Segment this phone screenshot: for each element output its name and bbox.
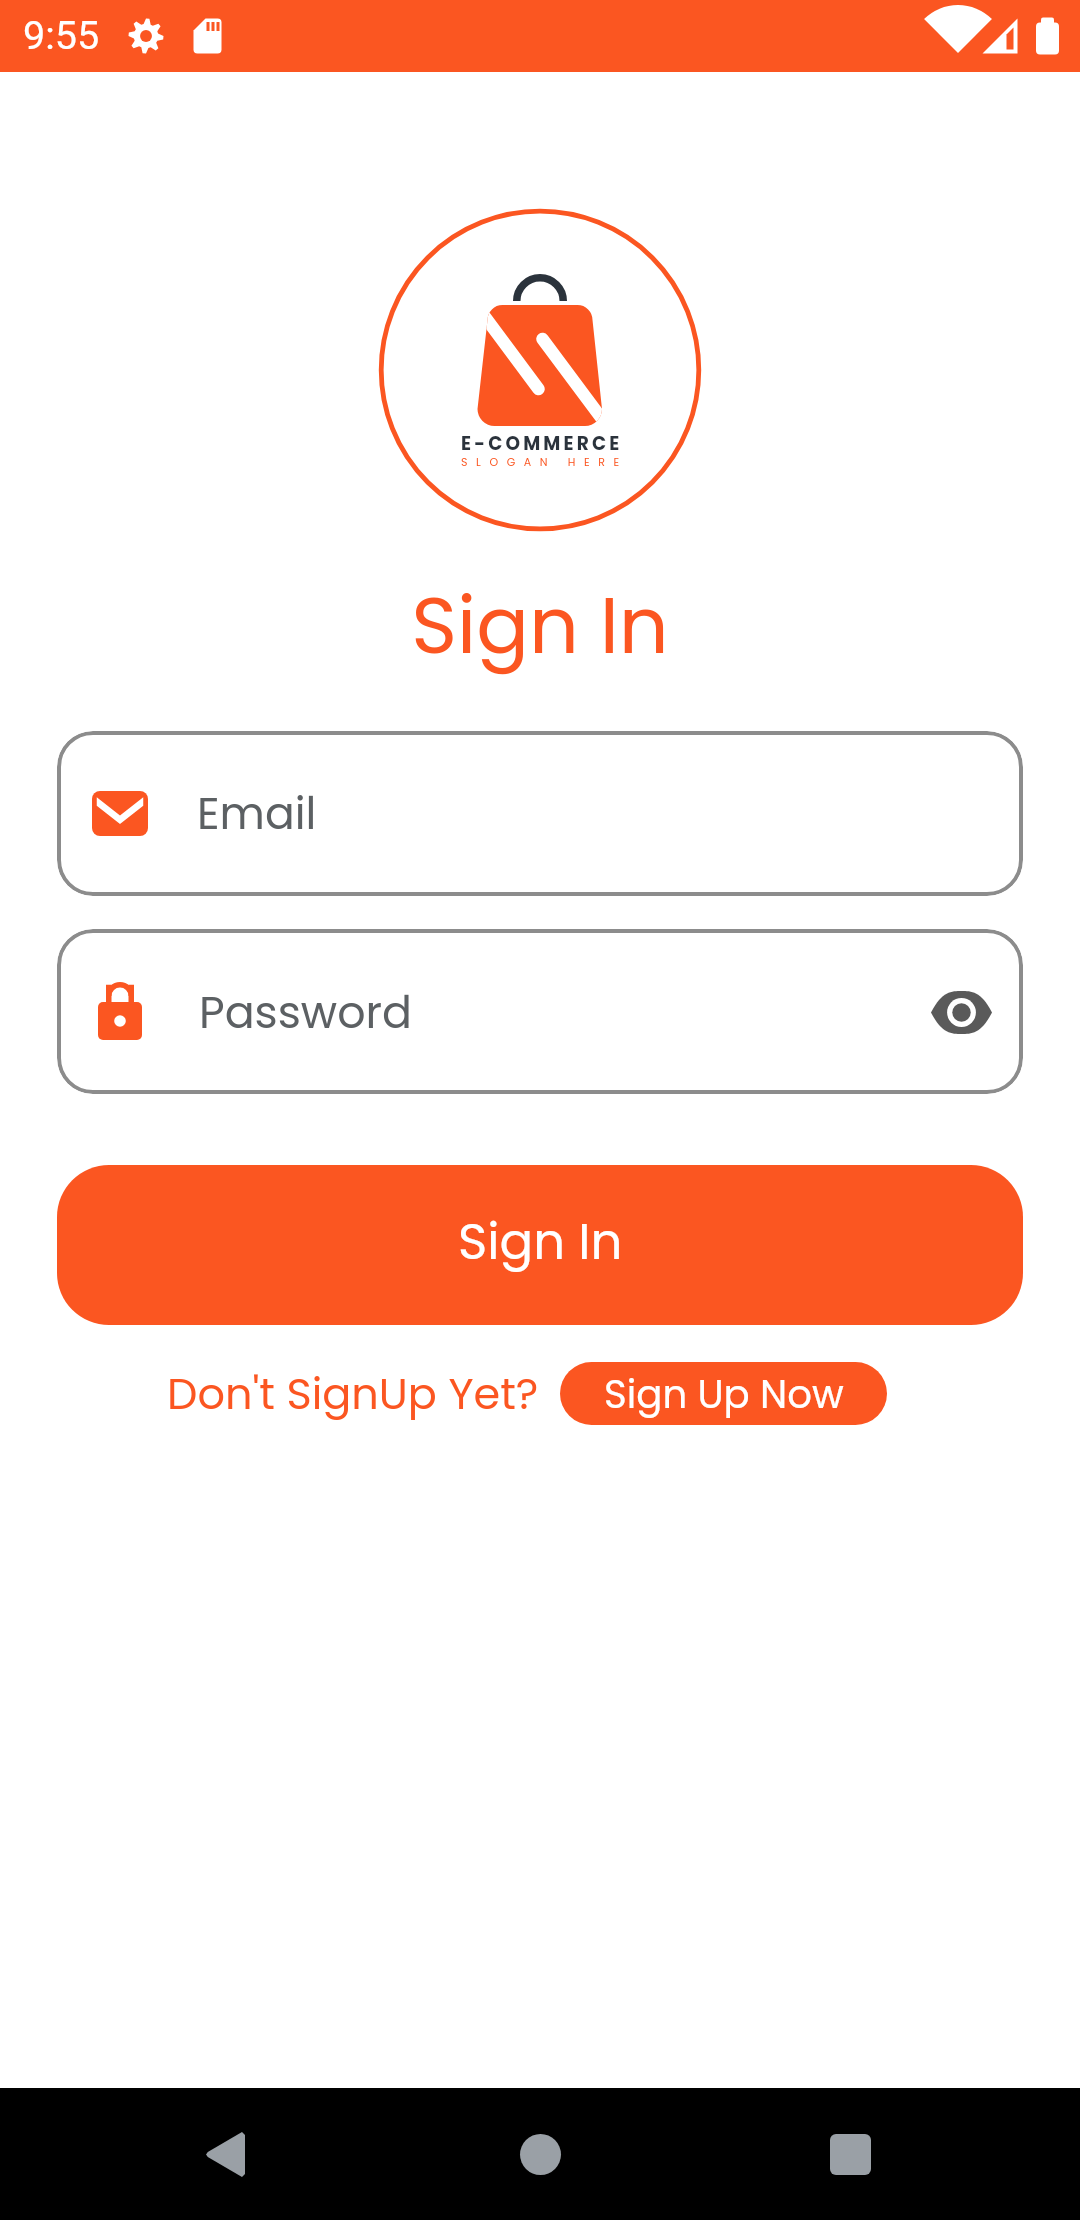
button[interactable]: Password xyxy=(57,929,1023,1094)
staticText: Don't SignUp Yet? xyxy=(167,1364,539,1424)
staticText: 9:55 xyxy=(23,12,100,58)
button[interactable]: Show password xyxy=(917,968,1005,1056)
button[interactable]: Sign Up Now xyxy=(560,1362,887,1425)
staticText: Sign In xyxy=(0,571,1080,680)
button[interactable]: Email xyxy=(57,731,1023,896)
staticText: Password xyxy=(199,981,412,1043)
button[interactable]: Sign In xyxy=(57,1165,1023,1325)
staticText: Sign In xyxy=(458,1207,623,1277)
button[interactable]: Home xyxy=(495,2109,585,2199)
button[interactable]: Back xyxy=(180,2109,270,2199)
staticText: E-COMMERCE xyxy=(461,431,623,457)
button[interactable]: Recents xyxy=(805,2109,895,2199)
staticText: Email xyxy=(197,783,317,845)
staticText: SLOGAN HERE xyxy=(461,454,628,469)
staticText: Sign Up Now xyxy=(604,1367,844,1421)
